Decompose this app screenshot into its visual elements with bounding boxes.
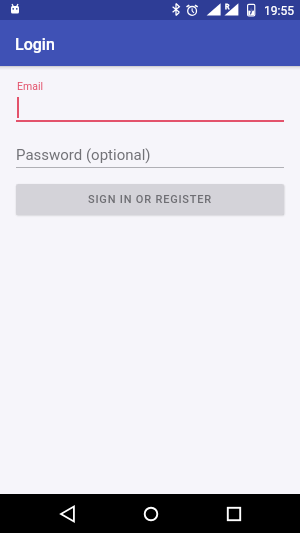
button[interactable]: Home <box>127 494 175 533</box>
staticText: 19:55 <box>264 4 294 18</box>
button[interactable]: Email <box>16 80 284 122</box>
staticText: Login <box>15 35 55 54</box>
button[interactable]: Password (optional) <box>16 146 284 168</box>
button[interactable]: Back <box>44 494 92 533</box>
staticText: SIGN IN OR REGISTER <box>88 193 212 206</box>
staticText: R <box>225 3 230 11</box>
staticText: Email <box>17 80 43 92</box>
button[interactable]: SIGN IN OR REGISTER <box>16 184 284 215</box>
staticText: Password (optional) <box>16 146 151 164</box>
button[interactable]: Recent apps <box>210 494 258 533</box>
